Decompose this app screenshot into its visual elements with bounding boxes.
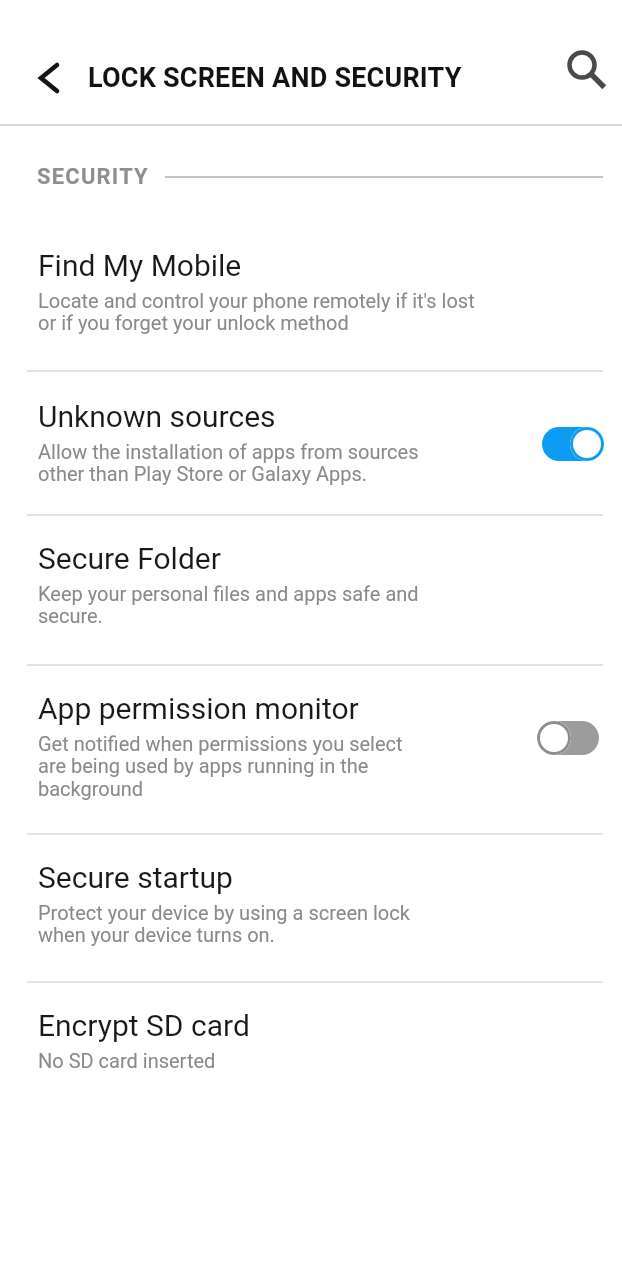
button[interactable]: App permission monitor — [0, 666, 622, 833]
button[interactable]: Unknown sources — [0, 372, 622, 514]
button[interactable]: Encrypt SD card — [0, 983, 622, 1102]
staticText: App permission monitor — [38, 691, 359, 726]
staticText: Unknown sources — [38, 399, 276, 434]
button[interactable]: Secure startup — [0, 835, 622, 981]
button[interactable] — [560, 52, 612, 104]
staticText: LOCK SCREEN AND SECURITY — [88, 62, 462, 94]
staticText: Protect your device by using a screen lo… — [38, 901, 410, 947]
staticText: Locate and control your phone remotely i… — [38, 289, 475, 335]
staticText: Encrypt SD card — [38, 1008, 250, 1043]
button[interactable] — [26, 55, 72, 101]
staticText: SECURITY — [37, 164, 149, 190]
staticText: Keep your personal files and apps safe a… — [38, 582, 419, 628]
staticText: Get notified when permissions you select… — [38, 732, 403, 801]
button[interactable]: Find My Mobile — [0, 248, 622, 370]
button[interactable]: Secure Folder — [0, 516, 622, 664]
staticText: No SD card inserted — [38, 1049, 216, 1072]
staticText: Secure Folder — [38, 541, 221, 576]
staticText: Find My Mobile — [38, 248, 242, 283]
staticText: Allow the installation of apps from sour… — [38, 440, 419, 486]
staticText: Secure startup — [38, 860, 233, 895]
